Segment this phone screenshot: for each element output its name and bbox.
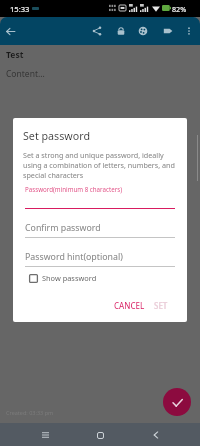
button[interactable]: Save note [163,388,191,416]
button[interactable]: Navigate up [0,17,21,45]
button[interactable]: Back [145,424,167,446]
staticText: Confirm password [25,222,101,234]
staticText: Set a strong and unique password, ideall… [23,150,177,180]
button[interactable]: CANCEL [111,298,148,313]
staticText: CANCEL [114,300,145,311]
staticText: Test [6,49,24,61]
staticText: Content... [6,68,45,80]
button[interactable]: SET [151,298,171,313]
staticText: Set password [23,129,90,144]
staticText: Password(minimum 8 characters) [25,185,123,193]
button[interactable]: More options [178,17,200,45]
button[interactable]: Labels [157,17,179,45]
staticText: Password hint(optional) [25,251,123,263]
staticText: 82% [172,4,187,14]
button[interactable]: Share [86,17,108,45]
button[interactable]: Change colour [132,17,154,45]
staticText: Created: 03:33 pm [6,409,54,416]
button[interactable]: Home [89,424,111,446]
staticText: SET [154,300,168,311]
staticText: 15:33 [10,4,30,14]
button[interactable]: Show password [25,273,97,283]
staticText: Show password [42,273,97,283]
button[interactable]: Lock note [110,17,132,45]
button[interactable]: Recent apps [34,424,56,446]
